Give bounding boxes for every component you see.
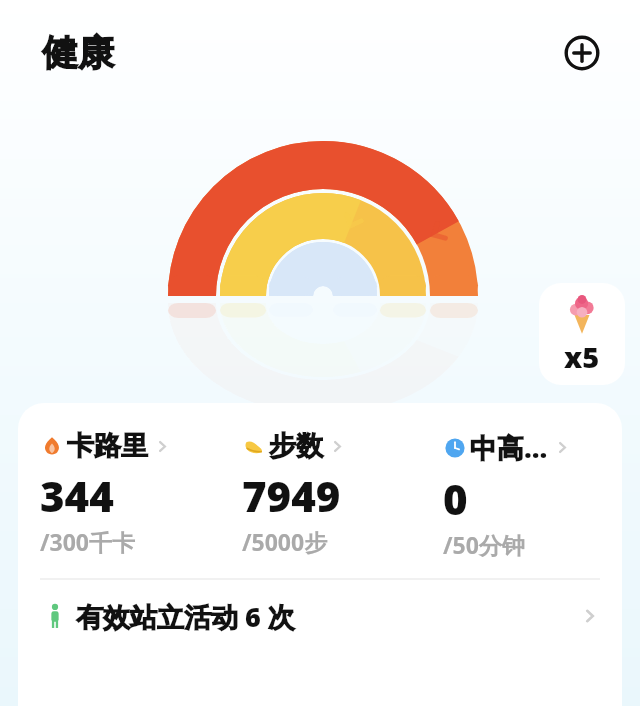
staticText: /300千卡 xyxy=(40,526,136,557)
staticText: 7949 xyxy=(242,467,341,524)
button[interactable]: 卡路里 xyxy=(18,429,220,557)
staticText: 中高... xyxy=(470,429,548,466)
staticText: /5000步 xyxy=(242,526,328,557)
button[interactable]: Add xyxy=(560,31,604,75)
button[interactable]: 有效站立活动 6 次 xyxy=(18,580,622,652)
staticText: 0 xyxy=(443,470,468,527)
staticText: 有效站立活动 6 次 xyxy=(76,598,295,635)
button[interactable]: 中高... xyxy=(421,429,622,560)
button[interactable]: x5 xyxy=(539,283,625,385)
staticText: 卡路里 xyxy=(67,429,148,463)
staticText: /50分钟 xyxy=(443,529,525,560)
staticText: 健康 xyxy=(42,30,114,75)
button[interactable]: 步数 xyxy=(220,429,421,557)
staticText: x5 xyxy=(564,337,600,376)
staticText: 步数 xyxy=(269,429,323,463)
staticText: 344 xyxy=(40,467,114,524)
